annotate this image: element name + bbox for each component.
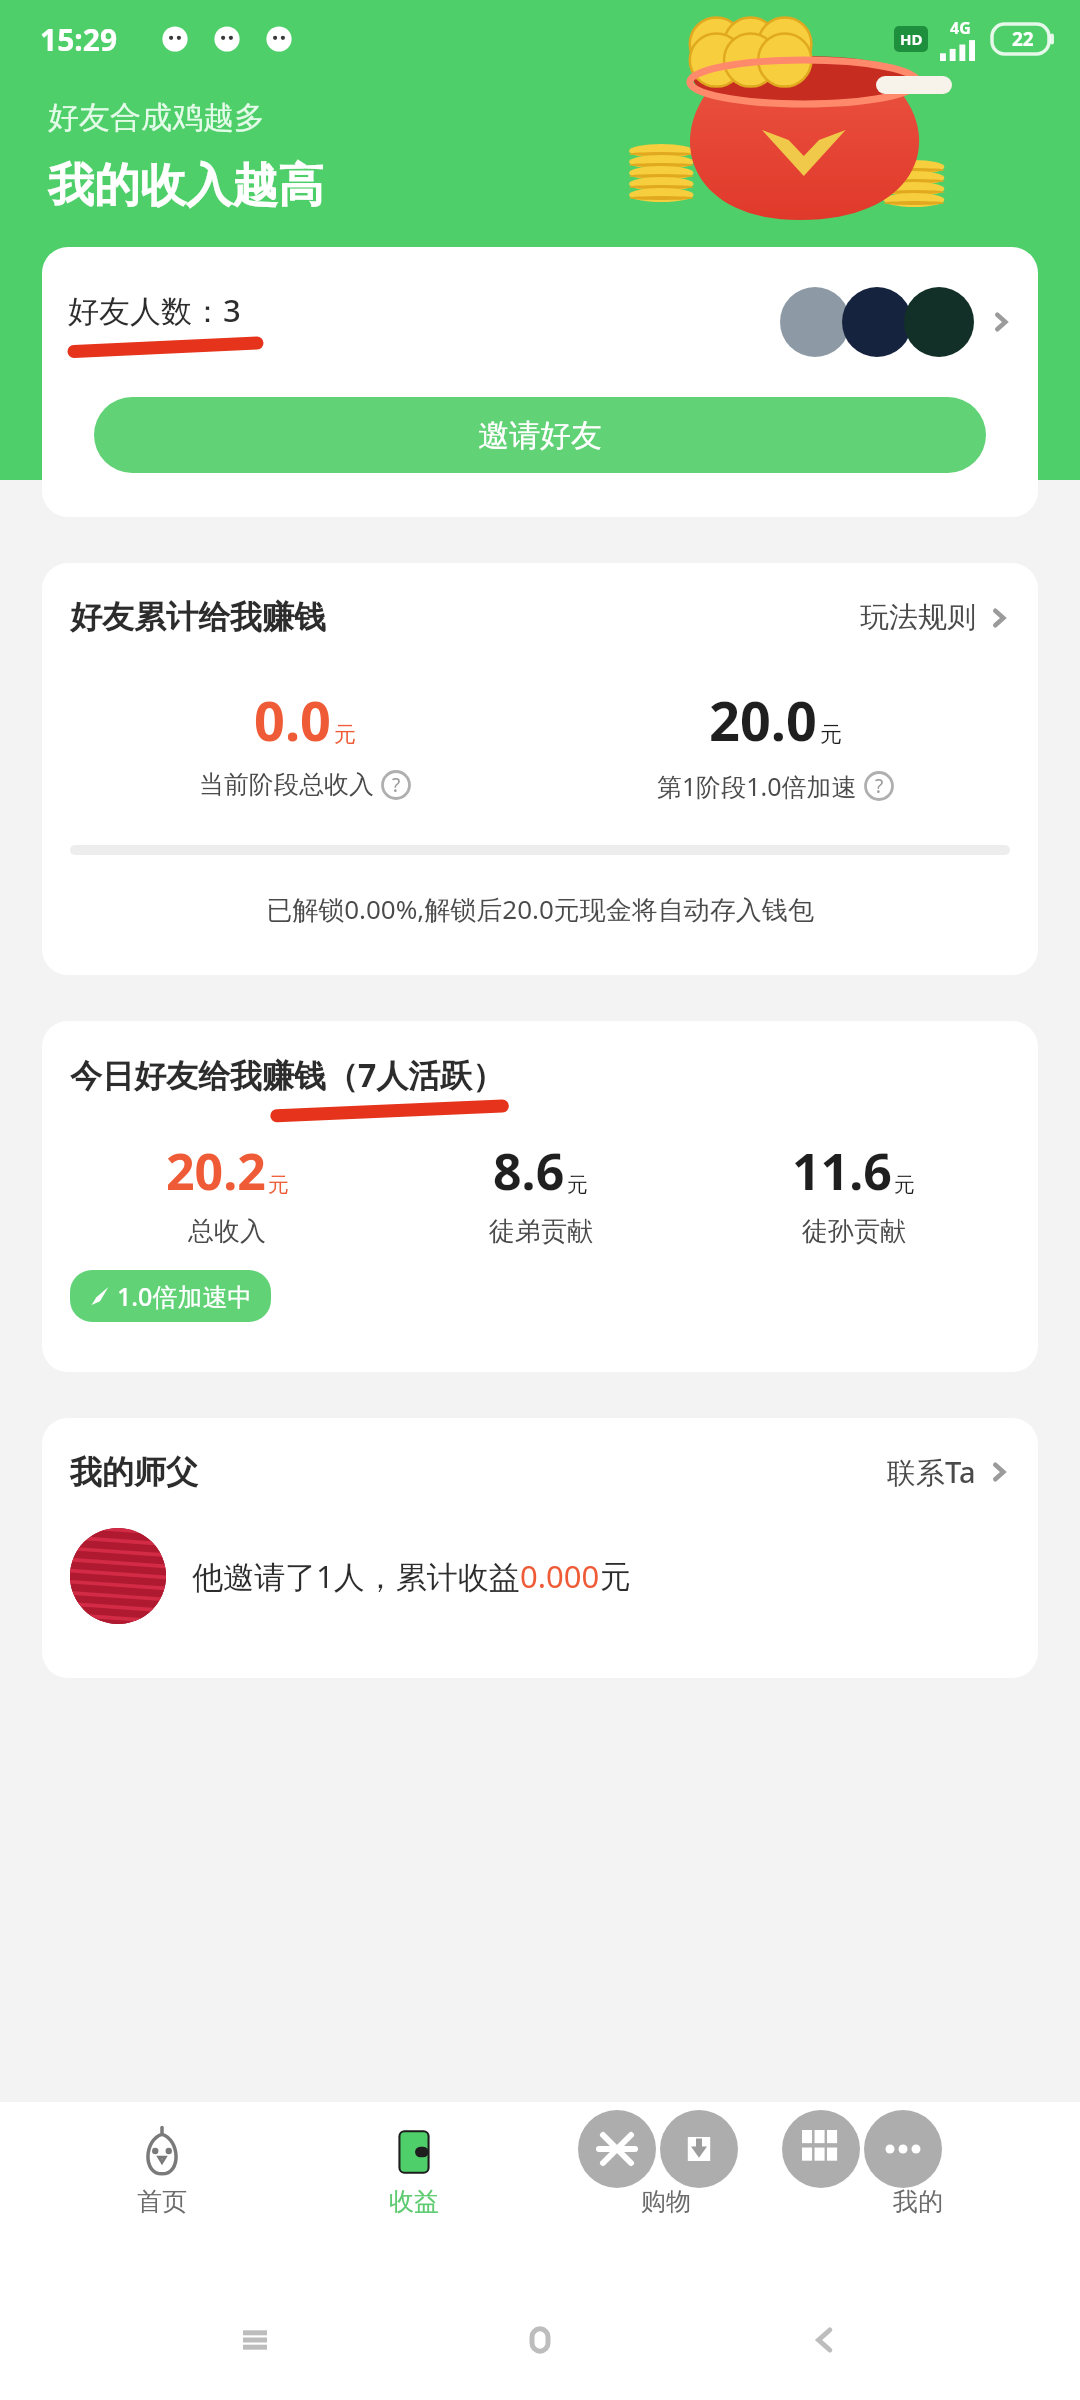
staticText: 1.0倍加速中 bbox=[117, 1279, 253, 1313]
staticText: 第1阶段1.0倍加速 bbox=[657, 769, 857, 803]
button[interactable]: 更多 bbox=[864, 2110, 942, 2188]
button[interactable]: 收益 bbox=[324, 2120, 504, 2223]
button[interactable]: Home bbox=[510, 2310, 570, 2370]
staticText: 11.6 bbox=[792, 1137, 892, 1205]
button[interactable]: 说明 bbox=[381, 770, 411, 800]
staticText: 元 bbox=[567, 1172, 588, 1198]
button[interactable]: 联系Ta bbox=[887, 1452, 1010, 1492]
staticText: 已解锁0.00%,解锁后20.0元现金将自动存入钱包 bbox=[70, 891, 1010, 927]
button[interactable]: 1.0倍加速中 bbox=[70, 1270, 271, 1322]
staticText: 20.0 bbox=[709, 683, 817, 757]
staticText: 徒弟贡献 bbox=[489, 1215, 593, 1248]
staticText: 我的师父 bbox=[70, 1452, 198, 1492]
staticText: 元 bbox=[894, 1172, 915, 1198]
button[interactable]: Back bbox=[795, 2310, 855, 2370]
staticText: ? bbox=[392, 772, 401, 798]
button[interactable]: Recents bbox=[225, 2310, 285, 2370]
staticText: 元 bbox=[268, 1172, 289, 1198]
staticText: 联系Ta bbox=[887, 1452, 976, 1492]
staticText: 0.0 bbox=[254, 683, 331, 757]
button[interactable]: 更多应用 bbox=[782, 2110, 860, 2188]
staticText: HD bbox=[900, 29, 923, 49]
staticText: 总收入 bbox=[188, 1215, 266, 1248]
staticText: 邀请好友 bbox=[478, 416, 602, 455]
staticText: 收益 bbox=[389, 2186, 439, 2217]
staticText: 0.000 bbox=[520, 1555, 600, 1597]
staticText: 22 bbox=[1012, 26, 1034, 52]
button[interactable]: 截图 bbox=[578, 2110, 656, 2188]
button[interactable]: 我的 bbox=[828, 2120, 1008, 2223]
staticText: 我的收入越高 bbox=[48, 157, 324, 215]
button[interactable]: 邀请好友 bbox=[94, 397, 986, 473]
button[interactable]: 玩法规则 bbox=[860, 599, 1010, 636]
staticText: 首页 bbox=[137, 2186, 187, 2217]
staticText: 好友合成鸡越多 bbox=[48, 98, 265, 137]
staticText: 8.6 bbox=[493, 1137, 565, 1205]
button[interactable]: 说明 bbox=[864, 771, 894, 801]
staticText: 当前阶段总收入 bbox=[199, 769, 374, 800]
staticText: 我的 bbox=[893, 2186, 943, 2217]
staticText: 徒孙贡献 bbox=[802, 1215, 906, 1248]
staticText: 购物 bbox=[641, 2186, 691, 2217]
staticText: 20.2 bbox=[166, 1137, 266, 1205]
button[interactable]: 保存 bbox=[660, 2110, 738, 2188]
staticText: 元 bbox=[334, 721, 356, 749]
button[interactable]: 首页 bbox=[72, 2120, 252, 2223]
staticText: ? bbox=[875, 773, 884, 799]
staticText: 今日好友给我赚钱（7人活跃） bbox=[70, 1053, 505, 1097]
staticText: 好友累计给我赚钱 bbox=[70, 597, 326, 637]
staticText: 好友人数：3 bbox=[68, 289, 241, 331]
button[interactable]: 购物 bbox=[576, 2120, 756, 2223]
staticText: 玩法规则 bbox=[860, 599, 976, 636]
staticText: 元 bbox=[820, 721, 842, 749]
staticText: 15:29 bbox=[40, 19, 118, 60]
button[interactable]: 好友人数：3 bbox=[42, 247, 1038, 397]
staticText: 他邀请了1人，累计收益 bbox=[192, 1555, 520, 1597]
staticText: 元 bbox=[600, 1557, 631, 1596]
staticText: 4G bbox=[950, 17, 971, 39]
